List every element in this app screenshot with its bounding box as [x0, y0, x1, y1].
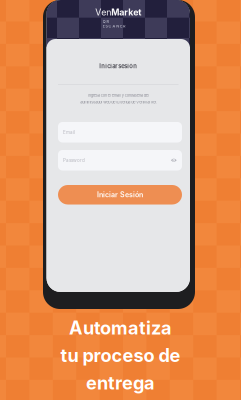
- staticText: Ingresa con el email y contraseña del: [88, 93, 149, 98]
- staticText: VenMarket: [95, 7, 141, 17]
- button[interactable]: Email: [58, 122, 182, 142]
- staticText: Email: [63, 129, 75, 135]
- staticText: QR ESCANER: [103, 19, 134, 24]
- staticText: Automatiza: [69, 317, 172, 339]
- staticText: Iniciar sesión: [99, 62, 137, 70]
- staticText: entrega: [86, 372, 155, 394]
- staticText: Iniciar Sesión: [97, 190, 143, 199]
- staticText: tu proceso de: [60, 344, 180, 366]
- staticText: Password: [63, 157, 85, 163]
- button[interactable]: Password: [58, 150, 182, 170]
- staticText: administrador web de tu tienda de VenMar…: [80, 100, 156, 105]
- button[interactable]: Iniciar Sesión: [58, 185, 182, 204]
